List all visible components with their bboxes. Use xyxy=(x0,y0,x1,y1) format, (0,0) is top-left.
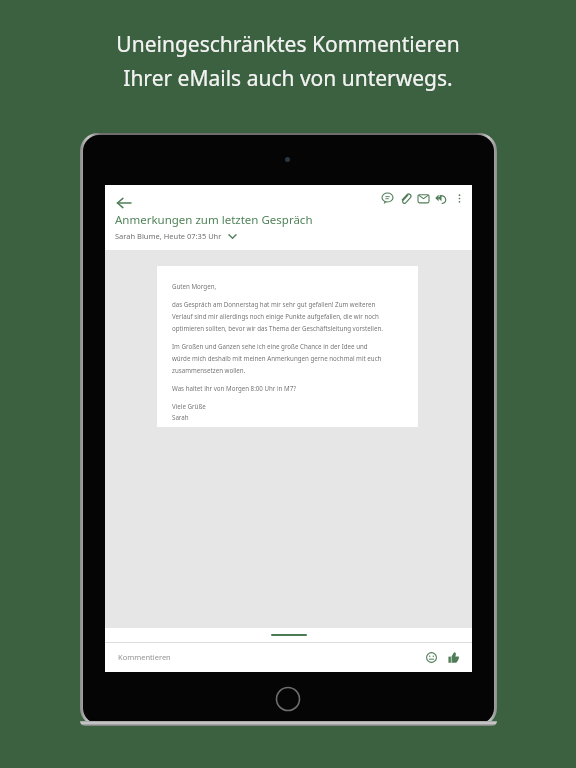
staticText: Sarah Blume, Heute 07:35 Uhr xyxy=(115,231,222,241)
button[interactable]: Ziehgriff xyxy=(105,628,472,642)
staticText: Sarah xyxy=(172,413,189,421)
button[interactable]: Anhang xyxy=(396,189,414,207)
button[interactable]: Archivieren xyxy=(414,189,432,207)
button[interactable]: Kommentieren xyxy=(118,652,422,662)
staticText: optimieren sollten, bevor wir das Thema … xyxy=(172,324,383,332)
staticText: Viele Grüße xyxy=(172,402,206,410)
staticText: Uneingeschränktes Kommentieren xyxy=(116,30,460,59)
staticText: würde mich deshalb mit meinen Anmerkunge… xyxy=(172,354,382,362)
button[interactable]: Details anzeigen xyxy=(227,231,237,241)
staticText: Verlauf sind mir allerdings noch einige … xyxy=(172,312,379,320)
button[interactable]: Gefällt mir xyxy=(444,648,462,666)
other: Home xyxy=(275,686,301,712)
button[interactable]: Kommentar xyxy=(378,189,396,207)
staticText: Anmerkungen zum letzten Gespräch xyxy=(115,212,313,228)
button[interactable]: Zurück xyxy=(110,189,138,217)
staticText: das Gespräch am Donnerstag hat mir sehr … xyxy=(172,300,376,308)
staticText: zusammensetzen wollen. xyxy=(172,366,246,374)
staticText: Ihrer eMails auch von unterwegs. xyxy=(123,64,453,93)
staticText: Kommentieren xyxy=(118,652,171,662)
button[interactable]: Emoji xyxy=(422,648,440,666)
staticText: Im Großen und Ganzen sehe ich eine große… xyxy=(172,342,368,350)
staticText: Guten Morgen, xyxy=(172,282,217,290)
button[interactable]: Weitere Optionen xyxy=(450,189,468,207)
staticText: Was haltet ihr von Morgen 8:00 Uhr in M7… xyxy=(172,384,296,392)
button[interactable]: Allen antworten xyxy=(432,189,450,207)
